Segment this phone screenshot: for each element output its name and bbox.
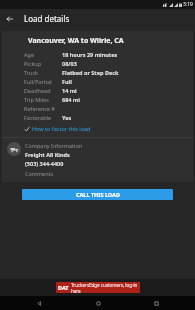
button[interactable]: Recent apps [136,296,176,310]
staticText: Load details [24,13,70,24]
staticText: CALL THIS LOAD [76,191,120,198]
button[interactable]: Home [78,296,118,310]
button[interactable]: How to factor this load [24,125,193,132]
staticText: Reference # [24,105,62,112]
staticText: 08/03 [62,60,77,67]
staticText: Truck [24,69,62,76]
staticText: Freight All Kinds [25,151,70,158]
staticText: Trip Miles [24,96,62,103]
staticText: 684 mi [62,96,80,103]
staticText: Comments [25,170,54,177]
staticText: TruckersEdge customers, log-in here [71,282,140,293]
staticText: Age [24,51,62,58]
staticText: 18 hours 29 minutes [62,51,118,58]
staticText: Full/Partial [24,78,62,85]
staticText: Yes [62,114,72,121]
staticText: Company Information [25,142,83,149]
staticText: Pickup [24,60,62,67]
staticText: Factorable [24,114,62,121]
staticText: Full [62,78,72,85]
staticText: How to factor this load [32,125,91,132]
button[interactable]: Back [0,9,20,28]
button[interactable]: DAT [56,282,140,293]
staticText: Flatbed or Step Deck [62,69,119,76]
staticText: (503) 344-4400 [25,160,64,167]
staticText: Deadhead [24,87,62,94]
button[interactable]: CALL THIS LOAD [22,189,173,200]
button[interactable]: Company Information [7,142,193,177]
staticText: 3:19 [183,1,193,8]
staticText: Vancouver, WA to Wilrie, CA [28,36,124,46]
staticText: DAT [58,284,69,291]
button[interactable]: Back [19,296,59,310]
staticText: 14 mi [62,87,77,94]
